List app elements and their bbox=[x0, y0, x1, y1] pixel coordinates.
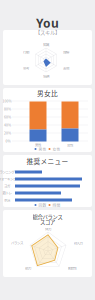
staticText: 60% bbox=[4, 114, 11, 119]
staticText: ランニング bbox=[0, 169, 14, 174]
staticText: 知識 bbox=[43, 42, 49, 47]
staticText: ウォーキング bbox=[0, 176, 16, 181]
staticText: 【スキル】 bbox=[35, 29, 60, 36]
staticText: 男女比 bbox=[37, 88, 58, 98]
staticText: 総合バランス bbox=[32, 213, 62, 221]
staticText: 柔軟性 bbox=[67, 265, 76, 270]
staticText: 筋力 bbox=[25, 265, 31, 270]
staticText: 0% bbox=[5, 138, 10, 143]
staticText: 80% bbox=[4, 106, 11, 111]
staticText: 男性 bbox=[38, 146, 46, 152]
staticText: バランス bbox=[11, 240, 23, 245]
staticText: スコア bbox=[40, 218, 55, 226]
staticText: 理解 bbox=[63, 49, 69, 54]
staticText: 100% bbox=[2, 98, 11, 103]
staticText: 持久力 bbox=[73, 240, 82, 245]
staticText: 女性 bbox=[52, 146, 60, 152]
staticText: 筋トレ bbox=[2, 190, 11, 195]
staticText: 20% bbox=[4, 130, 11, 135]
staticText: 推奨メニュー bbox=[26, 156, 68, 166]
staticText: 表現 bbox=[63, 65, 69, 70]
staticText: 時間 bbox=[52, 202, 60, 208]
staticText: 女性 bbox=[67, 142, 73, 147]
staticText: 回数 bbox=[38, 202, 46, 208]
staticText: 水泳 bbox=[4, 197, 10, 202]
staticText: 40% bbox=[4, 122, 11, 127]
staticText: You bbox=[36, 15, 59, 31]
staticText: 行動 bbox=[23, 49, 29, 54]
staticText: ヨガ bbox=[4, 183, 10, 188]
staticText: 体力 bbox=[45, 226, 51, 231]
staticText: 協調 bbox=[43, 73, 49, 78]
staticText: 男性 bbox=[35, 142, 41, 147]
staticText: 思考 bbox=[23, 65, 29, 70]
